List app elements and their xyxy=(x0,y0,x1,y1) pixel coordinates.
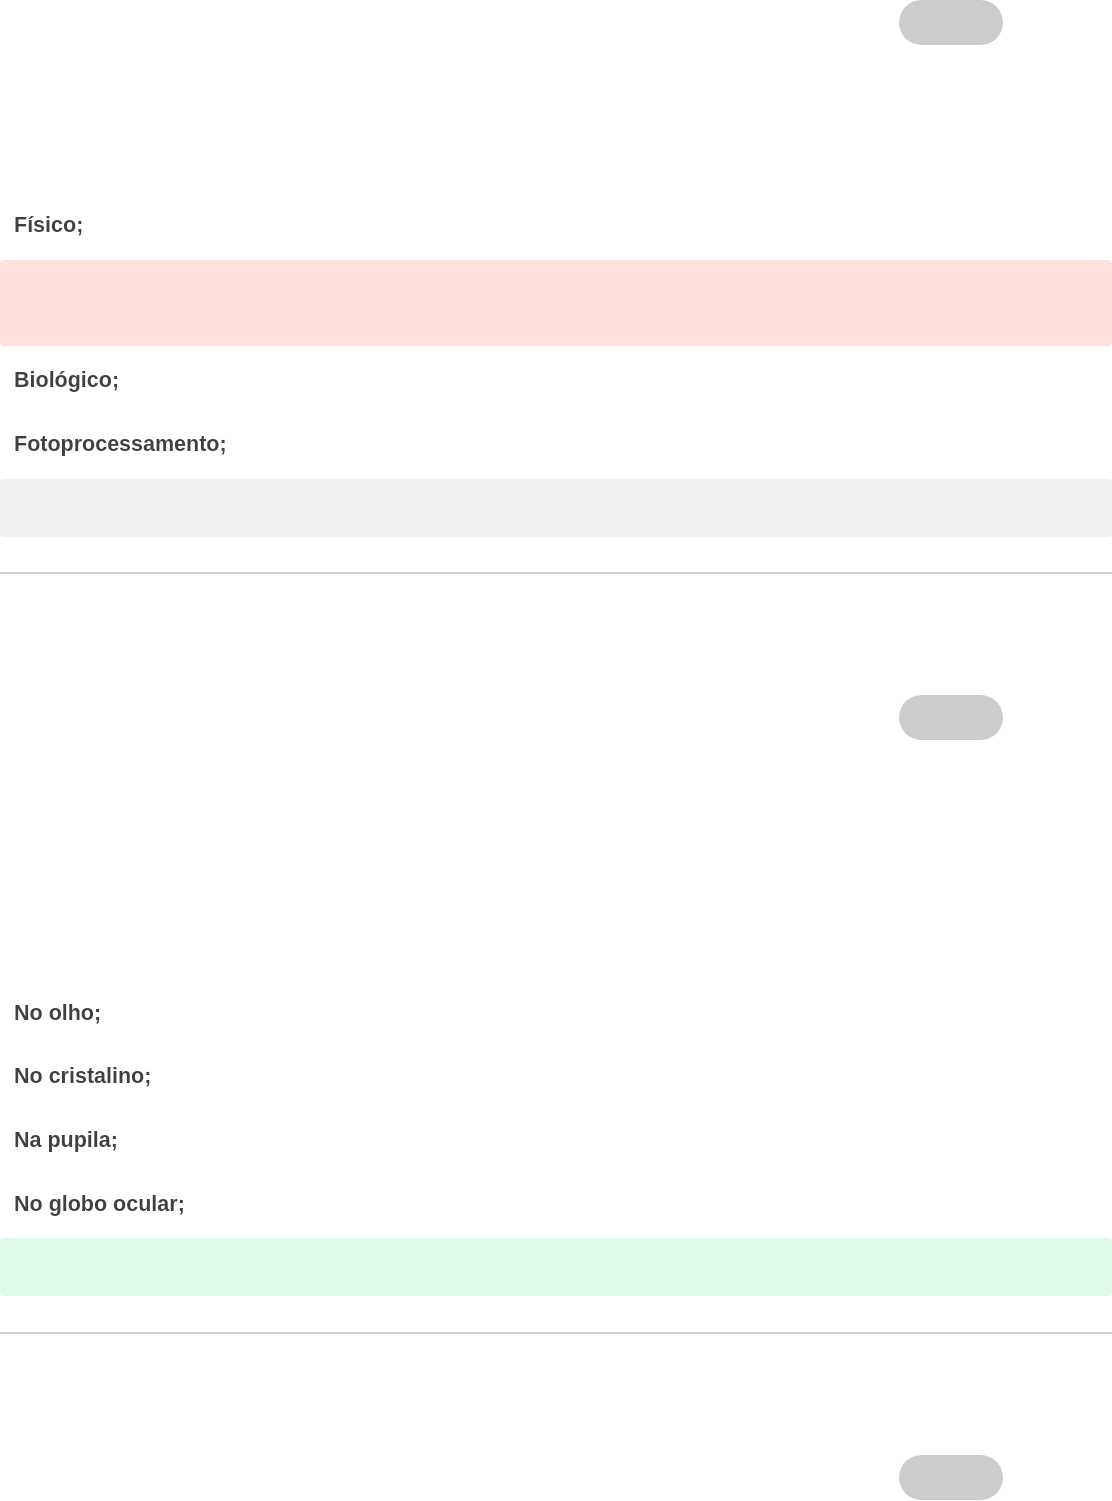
button[interactable]: Ver resposta da questão 1 xyxy=(899,0,1003,45)
button[interactable]: No olho; xyxy=(0,983,1112,1040)
button[interactable]: Na pupila; xyxy=(0,1110,1112,1167)
staticText: Na pupila; xyxy=(14,1128,118,1152)
button[interactable]: Fotoprocessamento; xyxy=(0,414,1112,471)
staticText: No olho; xyxy=(14,1001,102,1025)
button[interactable]: Ver resposta da questão 3 xyxy=(899,1455,1003,1500)
staticText: No cristalino; xyxy=(14,1064,152,1088)
button[interactable]: Biológico; xyxy=(0,350,1112,407)
button[interactable]: Físico; xyxy=(0,195,1112,252)
staticText: Biológico; xyxy=(14,368,120,392)
button[interactable]: No cristalino; xyxy=(0,1046,1112,1103)
button[interactable]: Ver resposta da questão 2 xyxy=(899,695,1003,740)
staticText: Fotoprocessamento; xyxy=(14,432,227,456)
staticText: Físico; xyxy=(14,213,84,237)
button[interactable]: No globo ocular; xyxy=(0,1174,1112,1231)
staticText: No globo ocular; xyxy=(14,1192,185,1216)
